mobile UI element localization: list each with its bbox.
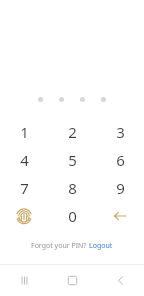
button[interactable]: Logout bbox=[89, 241, 113, 251]
staticText: 2 bbox=[68, 122, 77, 142]
button[interactable]: Backspace bbox=[107, 203, 133, 229]
button[interactable]: 5 bbox=[57, 146, 87, 174]
staticText: 8 bbox=[68, 178, 77, 198]
button[interactable]: Home bbox=[48, 265, 96, 296]
staticText: 9 bbox=[116, 178, 125, 198]
button[interactable]: 1 bbox=[9, 118, 39, 146]
staticText: 5 bbox=[68, 150, 77, 170]
button[interactable]: 6 bbox=[105, 146, 135, 174]
button[interactable]: 4 bbox=[9, 146, 39, 174]
button[interactable]: 7 bbox=[9, 174, 39, 202]
button[interactable]: 3 bbox=[105, 118, 135, 146]
staticText: Forgot your PIN? bbox=[31, 241, 89, 251]
staticText: 3 bbox=[116, 122, 125, 142]
button[interactable]: Recents bbox=[0, 265, 48, 296]
staticText: 0 bbox=[68, 206, 77, 226]
staticText: 7 bbox=[20, 178, 29, 198]
staticText: 6 bbox=[116, 150, 125, 170]
button[interactable]: 8 bbox=[57, 174, 87, 202]
button[interactable]: Back bbox=[96, 265, 144, 296]
button[interactable]: Fingerprint unlock bbox=[11, 203, 37, 229]
button[interactable]: 0 bbox=[57, 202, 87, 230]
staticText: 4 bbox=[20, 150, 29, 170]
button[interactable]: 2 bbox=[57, 118, 87, 146]
staticText: 1 bbox=[20, 122, 29, 142]
staticText: Logout bbox=[89, 241, 113, 251]
button[interactable]: 9 bbox=[105, 174, 135, 202]
